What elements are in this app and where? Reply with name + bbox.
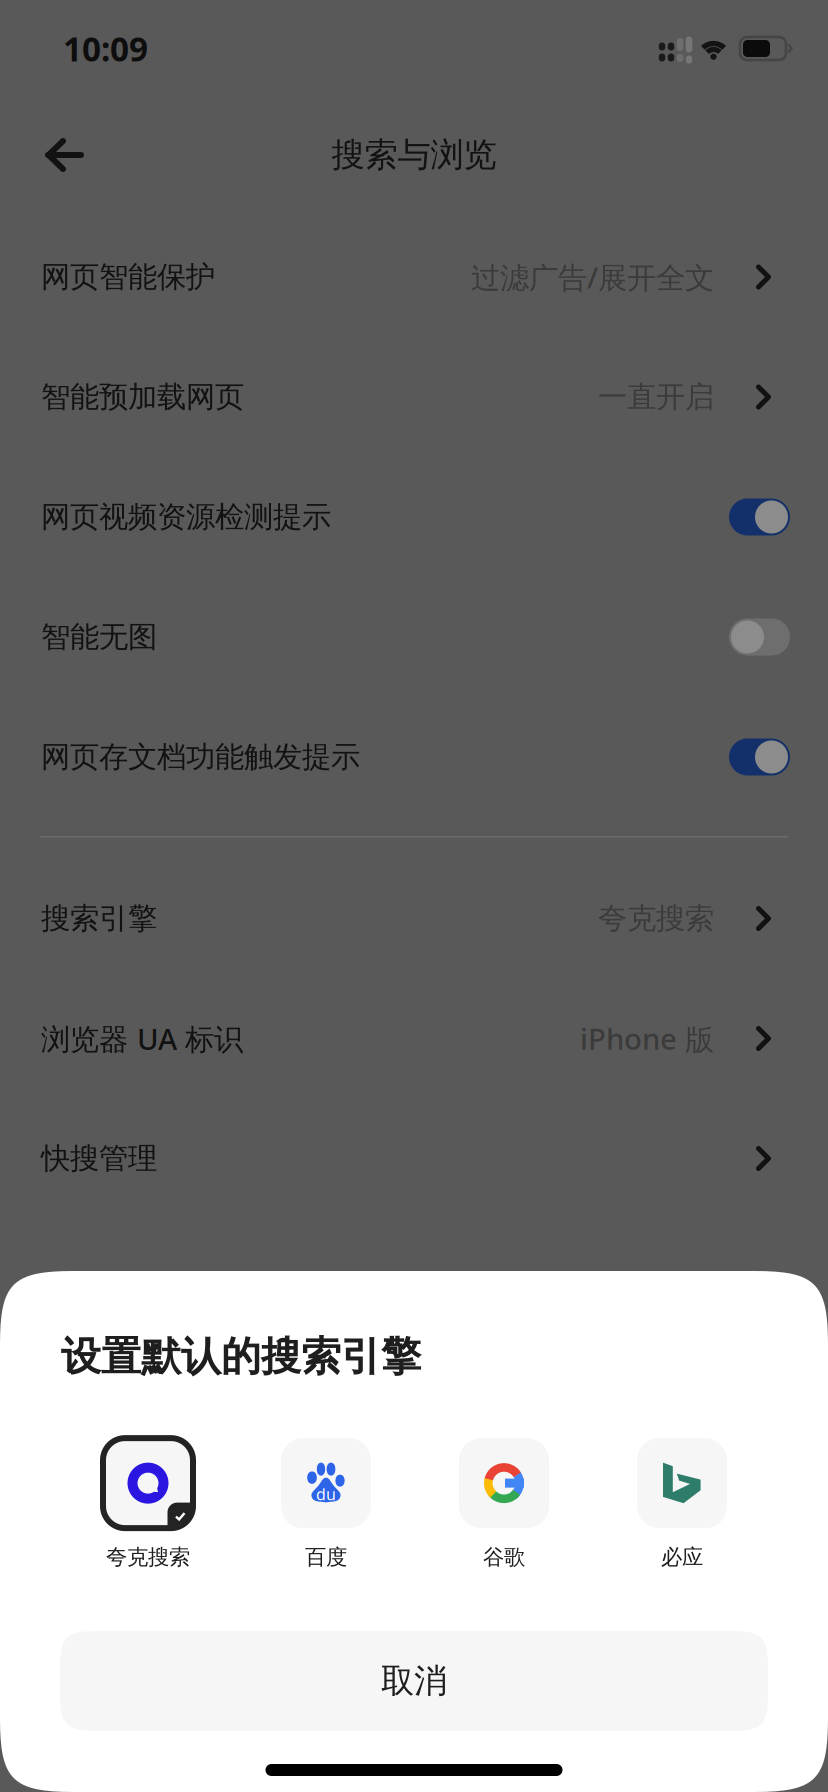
button[interactable]: 智能预加载网页 [0, 337, 828, 457]
staticText: 百度 [305, 1544, 347, 1570]
button[interactable]: 快搜管理 [0, 1098, 828, 1218]
button[interactable]: du [262, 1438, 390, 1570]
staticText: 夸克搜索 [106, 1544, 190, 1570]
staticText: 取消 [381, 1660, 447, 1701]
button[interactable]: 智能无图 [0, 577, 828, 697]
staticText: 设置默认的搜索引擎 [61, 1332, 421, 1381]
button[interactable]: 谷歌 [440, 1438, 568, 1570]
staticText: 10:09 [63, 26, 148, 71]
staticText: 夸克搜索 [598, 900, 714, 936]
staticText: 快搜管理 [41, 1140, 157, 1176]
staticText: 浏览器 UA 标识 [41, 1019, 243, 1058]
staticText: 谷歌 [483, 1544, 525, 1570]
staticText: 智能无图 [41, 619, 157, 655]
staticText: 搜索引擎 [41, 900, 157, 936]
button[interactable]: 网页视频资源检测提示 [0, 457, 828, 577]
staticText: 网页存文档功能触发提示 [41, 739, 360, 775]
button[interactable]: 浏览器 UA 标识 [0, 978, 828, 1098]
staticText: 一直开启 [598, 379, 714, 415]
staticText: 网页视频资源检测提示 [41, 499, 331, 535]
button[interactable]: 夸克搜索 [84, 1438, 212, 1570]
staticText: 必应 [661, 1544, 703, 1570]
staticText: 过滤广告/展开全文 [471, 257, 714, 296]
button[interactable]: 搜索引擎 [0, 858, 828, 978]
staticText: 网页智能保护 [41, 259, 215, 295]
staticText: 搜索与浏览 [331, 134, 496, 175]
button[interactable]: 返回 [31, 124, 98, 186]
button[interactable]: 网页存文档功能触发提示 [0, 697, 828, 817]
button[interactable]: 必应 [618, 1438, 746, 1570]
staticText: du [316, 1483, 336, 1505]
button[interactable]: 网页智能保护 [0, 217, 828, 337]
staticText: 智能预加载网页 [41, 379, 244, 415]
staticText: iPhone 版 [580, 1019, 714, 1058]
button[interactable]: 取消 [60, 1631, 768, 1731]
